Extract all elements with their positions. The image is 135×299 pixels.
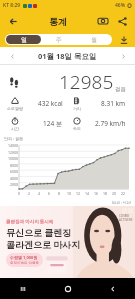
staticText: 12 [76, 191, 81, 196]
staticText: 4 [38, 191, 41, 196]
staticText: 6000 [3, 169, 18, 174]
staticText: 통계 [49, 16, 67, 27]
staticText: 2 [28, 191, 31, 196]
staticText: 20 [112, 191, 117, 196]
staticText: 속도 [73, 126, 81, 131]
staticText: 18 [103, 191, 108, 196]
button[interactable]: Advertisement [0, 206, 135, 278]
button[interactable]: Camera [95, 13, 111, 29]
staticText: 소모열량 [7, 106, 23, 111]
staticText: 46% [115, 2, 125, 9]
staticText: 6 [48, 191, 51, 196]
staticText: 2000 [3, 182, 18, 187]
staticText: 12985 [59, 69, 114, 95]
button[interactable]: 월 [76, 35, 111, 44]
button[interactable]: 시간 [5, 115, 67, 132]
staticText: 14 [85, 191, 90, 196]
staticText: COSME ACTIVERS [119, 214, 133, 222]
button[interactable]: Back [90, 278, 135, 299]
staticText: 8000 [3, 163, 18, 168]
button[interactable]: 속도 [67, 115, 130, 132]
staticText: 10 [67, 191, 72, 196]
staticText: 걸음 [115, 86, 126, 93]
staticText: 뮤신으로 클렌징 [6, 226, 72, 238]
button[interactable]: 일 [6, 35, 41, 44]
staticText: 124 분 [43, 119, 63, 128]
staticText: 콜라겐으로 마사지 [6, 238, 81, 250]
button[interactable]: Next day [117, 50, 129, 62]
button[interactable]: 주 [41, 35, 76, 44]
staticText: KT 8:29 [3, 2, 21, 9]
staticText: 월 [91, 36, 97, 44]
staticText: 0 [18, 191, 21, 196]
button[interactable]: Download [117, 33, 130, 46]
staticText: 14000 [3, 143, 18, 148]
staticText: 수량별 1,000원 [10, 255, 38, 260]
staticText: 증정이벤트 진행중 [10, 260, 39, 265]
staticText: 주 [56, 36, 62, 44]
staticText: 22 [121, 191, 126, 196]
staticText: 01월 18일 목요일 [38, 51, 97, 61]
button[interactable]: Previous day [6, 50, 18, 62]
staticText: 일 [21, 36, 27, 44]
staticText: 8.31 km [101, 99, 126, 108]
button[interactable]: Recent apps [0, 278, 45, 299]
staticText: 12000 [3, 150, 18, 155]
staticText: 시간 [11, 126, 19, 131]
staticText: 클렌징과 마사지 동시에 [6, 218, 54, 224]
staticText: 16 [94, 191, 99, 196]
staticText: (단위 : 시간) [112, 200, 131, 205]
button[interactable]: Back [5, 13, 21, 29]
staticText: 2.79 km/h [95, 119, 126, 128]
staticText: 단위 : 걸음 [4, 136, 24, 141]
staticText: 10000 [3, 156, 18, 161]
button[interactable]: 소모열량 [5, 95, 67, 112]
staticText: 4000 [3, 176, 18, 181]
staticText: 8 [58, 191, 61, 196]
button[interactable]: Home [45, 278, 90, 299]
button[interactable]: Share [114, 13, 130, 29]
staticText: 거리 [73, 106, 81, 111]
staticText: 432 kcal [38, 99, 63, 108]
button[interactable]: 거리 [67, 95, 130, 112]
